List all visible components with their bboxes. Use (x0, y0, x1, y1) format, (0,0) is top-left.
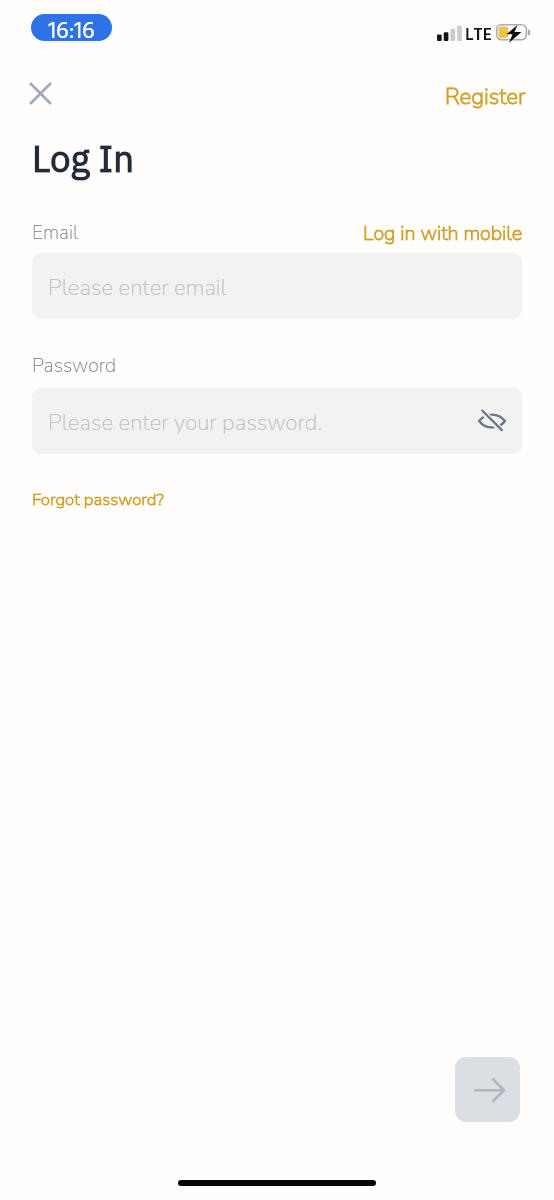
staticText: Forgot password? (32, 488, 164, 511)
button[interactable]: Next (455, 1057, 520, 1122)
staticText: Please enter your password. (48, 407, 323, 437)
staticText: Register (445, 81, 526, 112)
button[interactable]: Close (22, 75, 58, 111)
button[interactable]: Please enter your password. (32, 388, 522, 454)
staticText: Log in with mobile (363, 220, 523, 247)
staticText: LTE (465, 21, 492, 49)
button[interactable]: Please enter email (32, 253, 522, 319)
staticText: Please enter email (48, 272, 227, 302)
button[interactable]: Register (445, 81, 526, 112)
button[interactable]: Show password (474, 403, 510, 439)
staticText: Email (32, 220, 79, 246)
button[interactable]: Log in with mobile (363, 220, 523, 247)
staticText: Log In (32, 134, 135, 182)
staticText: Password (32, 352, 117, 379)
button[interactable]: Forgot password? (32, 488, 164, 511)
staticText: 16:16 (48, 14, 95, 40)
